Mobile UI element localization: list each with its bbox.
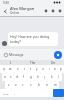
staticText: b (38, 83, 40, 87)
staticText: Online (10, 11, 20, 15)
staticText: m (54, 83, 57, 87)
staticText: s (10, 75, 12, 79)
button[interactable]: j (41, 73, 48, 81)
staticText: g (30, 75, 32, 79)
staticText: . (49, 91, 50, 95)
button[interactable]: k (48, 73, 55, 81)
staticText: i (49, 67, 50, 71)
button[interactable]: d (14, 73, 20, 81)
staticText: t (30, 67, 32, 71)
button[interactable]: q (0, 65, 7, 73)
button[interactable]: Enter (53, 89, 64, 97)
button[interactable]: The (22, 60, 43, 65)
staticText: I'm (51, 61, 56, 65)
button[interactable]: z (5, 81, 12, 89)
button[interactable]: w (7, 65, 14, 73)
button[interactable]: . (46, 89, 53, 97)
staticText: Alex Morgan (10, 6, 35, 11)
staticText: n (46, 83, 48, 87)
button[interactable]: a (2, 73, 8, 81)
staticText: e (17, 67, 19, 71)
button[interactable]: v (27, 81, 35, 89)
button[interactable]: s (8, 73, 14, 81)
button[interactable]: m (51, 81, 59, 89)
staticText: q (3, 67, 5, 71)
staticText: l (58, 75, 59, 79)
button[interactable]: , (11, 89, 18, 97)
button[interactable]: f (20, 73, 27, 81)
staticText: j (44, 75, 45, 79)
button[interactable]: ?123 (0, 89, 11, 97)
button[interactable]: y (34, 65, 40, 73)
staticText: ?123 (3, 92, 9, 95)
button[interactable]: c (19, 81, 27, 89)
button[interactable]: h (34, 73, 41, 81)
button[interactable]: Action (42, 7, 49, 14)
button[interactable]: l (55, 73, 62, 81)
staticText: h (37, 75, 39, 79)
staticText: , (14, 91, 15, 95)
button[interactable]: i (46, 65, 52, 73)
button[interactable]: e (14, 65, 21, 73)
button[interactable]: g (27, 73, 34, 81)
button[interactable]: r (21, 65, 28, 73)
button[interactable]: Back (0, 6, 10, 16)
staticText: c (22, 83, 24, 87)
button[interactable]: b (35, 81, 43, 89)
staticText: 9:30 (3, 1, 9, 5)
button[interactable]: Send (54, 51, 62, 59)
button[interactable]: Emoji (2, 51, 9, 58)
button[interactable]: Action (56, 7, 63, 14)
staticText: f (23, 75, 25, 79)
staticText: r (24, 67, 26, 71)
staticText: p (60, 67, 62, 71)
button[interactable]: n (43, 81, 51, 89)
staticText: y (36, 67, 38, 71)
staticText: u (42, 67, 44, 71)
staticText: k (51, 75, 53, 79)
staticText: x (15, 83, 17, 87)
button[interactable]: o (52, 65, 58, 73)
staticText: I (10, 61, 12, 65)
staticText: Hey! How are you doing today? (10, 34, 56, 44)
button[interactable]: Action (49, 7, 56, 14)
button[interactable]: I (0, 60, 22, 65)
staticText: d (16, 75, 18, 79)
button[interactable]: I'm (43, 60, 64, 65)
staticText: w (9, 67, 12, 71)
staticText: v (30, 83, 32, 87)
button[interactable]: x (12, 81, 19, 89)
staticText: Message (9, 52, 54, 57)
button[interactable]: p (58, 65, 64, 73)
staticText: z (8, 83, 10, 87)
staticText: a (4, 75, 6, 79)
staticText: o (54, 67, 56, 71)
staticText: The (30, 61, 36, 65)
button[interactable]: t (28, 65, 34, 73)
button[interactable]: u (40, 65, 46, 73)
